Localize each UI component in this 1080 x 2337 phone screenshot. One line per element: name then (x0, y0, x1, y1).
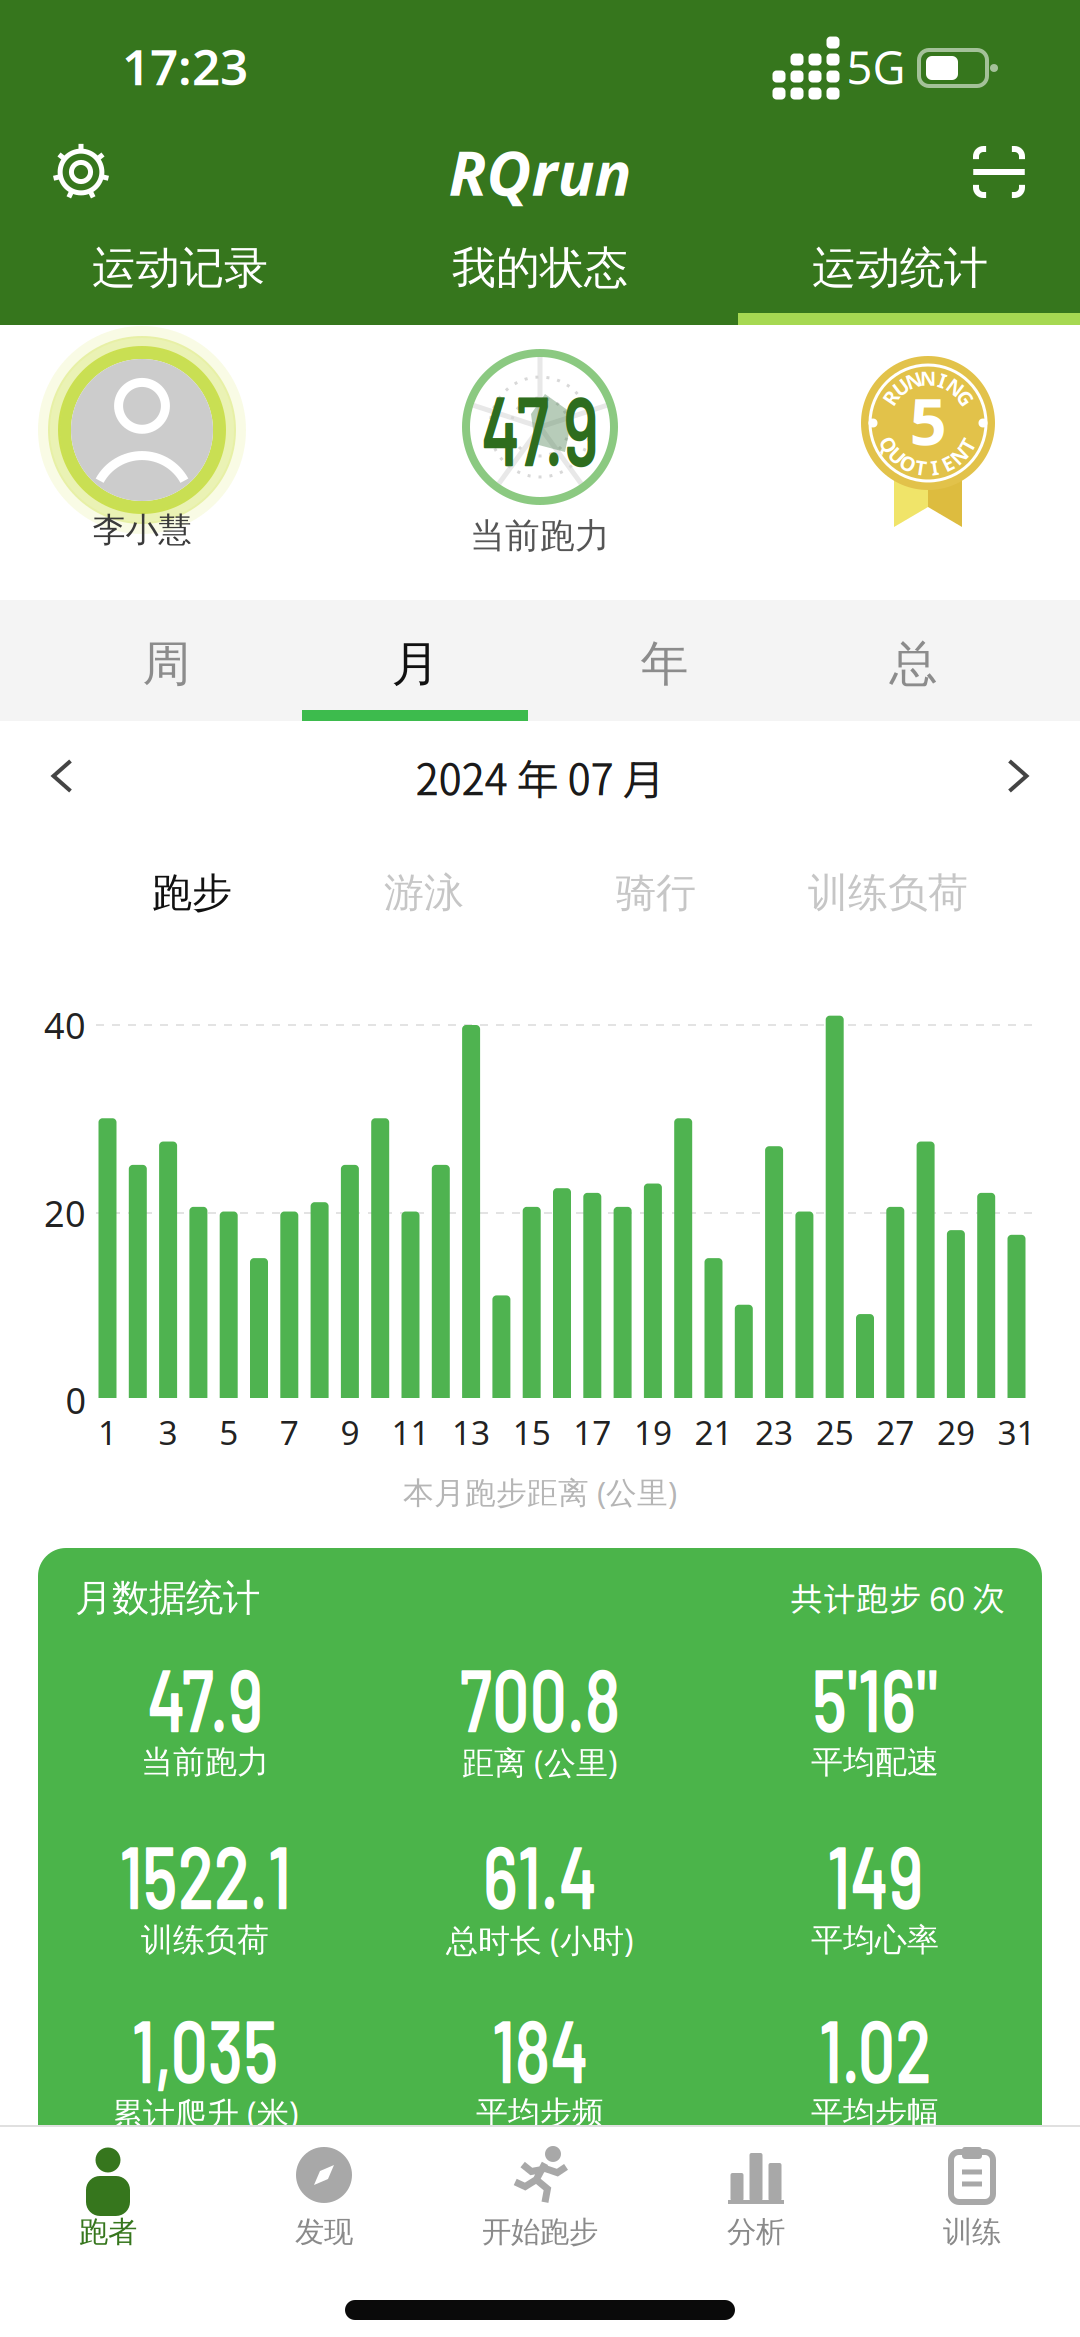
staticText: U (893, 374, 908, 400)
button[interactable]: 训练负荷 (772, 868, 1004, 917)
staticText: 61.4 (464, 1821, 616, 1927)
button[interactable]: Profile (71, 359, 213, 501)
staticText: 3 (159, 1410, 178, 1454)
staticText: 分析 (727, 2214, 785, 2250)
staticText: 7 (280, 1410, 299, 1454)
staticText: 发现 (295, 2214, 353, 2250)
button[interactable]: 开始跑步 (482, 2146, 598, 2250)
staticText: 29 (937, 1410, 975, 1454)
staticText: 月 (391, 634, 439, 693)
staticText: 27 (876, 1410, 914, 1454)
button[interactable]: 训练 (943, 2146, 1001, 2250)
button[interactable]: 运动记录 (0, 241, 360, 295)
staticText: 47.9 (453, 368, 626, 486)
staticText: 21 (694, 1410, 732, 1454)
button[interactable]: 跑步 (76, 868, 308, 917)
staticText: 1,035 (107, 1995, 303, 2101)
staticText: 5 (909, 377, 946, 463)
staticText: R (884, 385, 897, 411)
staticText: 5G (846, 37, 905, 97)
button[interactable]: Next month (1009, 761, 1026, 791)
staticText: N (906, 367, 922, 394)
staticText: 平均步幅 (811, 2093, 939, 2133)
button[interactable]: 分析 (727, 2146, 785, 2250)
staticText: O (900, 450, 916, 477)
staticText: I (938, 367, 946, 394)
staticText: 总 (889, 634, 937, 693)
button[interactable]: Settings (52, 143, 110, 201)
staticText: 平均心率 (811, 1920, 939, 1960)
staticText: 1.02 (800, 1995, 950, 2101)
staticText: G (958, 385, 972, 411)
staticText: 20 (44, 1189, 86, 1237)
staticText: 年 (640, 634, 688, 693)
staticText: 累计爬升 (米) (111, 2092, 299, 2134)
button[interactable]: 年 (540, 634, 789, 693)
staticText: 本月跑步距离 (公里) (403, 1472, 677, 1512)
staticText: 11 (391, 1410, 429, 1454)
staticText: T (915, 454, 927, 481)
staticText: 700.8 (433, 1644, 647, 1750)
staticText: 平均配速 (811, 1742, 939, 1782)
button[interactable]: Scan (976, 149, 1022, 195)
staticText: 17 (573, 1410, 611, 1454)
staticText: 平均步频 (476, 2093, 604, 2133)
staticText: 23 (755, 1410, 793, 1454)
button[interactable]: 总 (789, 634, 1038, 693)
staticText: 跑步 (152, 868, 232, 917)
staticText: N (920, 365, 936, 391)
button[interactable]: 周 (42, 634, 291, 693)
staticText: N (947, 374, 963, 400)
staticText: 1522.1 (90, 1821, 319, 1927)
staticText: 149 (811, 1821, 939, 1927)
staticText: 总时长 (小时) (446, 1919, 634, 1961)
button[interactable]: 发现 (295, 2146, 353, 2250)
staticText: 运动记录 (92, 241, 268, 295)
staticText: 运动统计 (812, 241, 988, 295)
button[interactable]: 运动统计 (720, 241, 1080, 295)
staticText: 5'16" (791, 1644, 959, 1750)
staticText: I (931, 454, 939, 481)
staticText: 1 (98, 1410, 117, 1454)
staticText: 周 (142, 634, 190, 693)
staticText: N (951, 442, 967, 469)
staticText: 训练负荷 (808, 868, 968, 917)
staticText: U (889, 442, 904, 469)
staticText: 开始跑步 (482, 2214, 598, 2250)
staticText: 李小慧 (92, 509, 191, 550)
button[interactable]: 骑行 (540, 868, 772, 917)
staticText: 19 (634, 1410, 672, 1454)
button[interactable]: 我的状态 (360, 241, 720, 295)
button[interactable]: 游泳 (308, 868, 540, 917)
staticText: 15 (513, 1410, 551, 1454)
button[interactable]: Previous month (53, 761, 70, 791)
staticText: 距离 (公里) (462, 1741, 618, 1783)
staticText: 5 (219, 1410, 238, 1454)
staticText: 跑者 (79, 2214, 137, 2250)
staticText: 当前跑力 (470, 515, 610, 557)
staticText: 2024 年 07 月 (415, 747, 664, 807)
staticText: 13 (452, 1410, 490, 1454)
staticText: 月数据统计 (75, 1575, 260, 1621)
staticText: 骑行 (616, 868, 696, 917)
staticText: 训练负荷 (141, 1920, 269, 1960)
staticText: 40 (44, 1001, 86, 1049)
staticText: RQrun (448, 131, 631, 213)
staticText: 25 (816, 1410, 854, 1454)
staticText: 我的状态 (452, 241, 628, 295)
staticText: 当前跑力 (141, 1742, 269, 1782)
staticText: 游泳 (384, 868, 464, 917)
staticText: 训练 (943, 2214, 1001, 2250)
staticText: 共计跑步 60 次 (790, 1573, 1005, 1621)
staticText: 17:23 (122, 33, 248, 99)
staticText: T (961, 431, 973, 458)
staticText: 31 (997, 1410, 1035, 1454)
staticText: 184 (475, 1995, 604, 2101)
button[interactable]: 跑者 (78, 2146, 138, 2250)
staticText: 0 (65, 1376, 86, 1424)
staticText: Q (881, 431, 897, 458)
staticText: 47.9 (128, 1644, 282, 1750)
staticText: E (942, 450, 953, 477)
button[interactable]: 月 (291, 634, 540, 693)
staticText: 9 (340, 1410, 359, 1454)
